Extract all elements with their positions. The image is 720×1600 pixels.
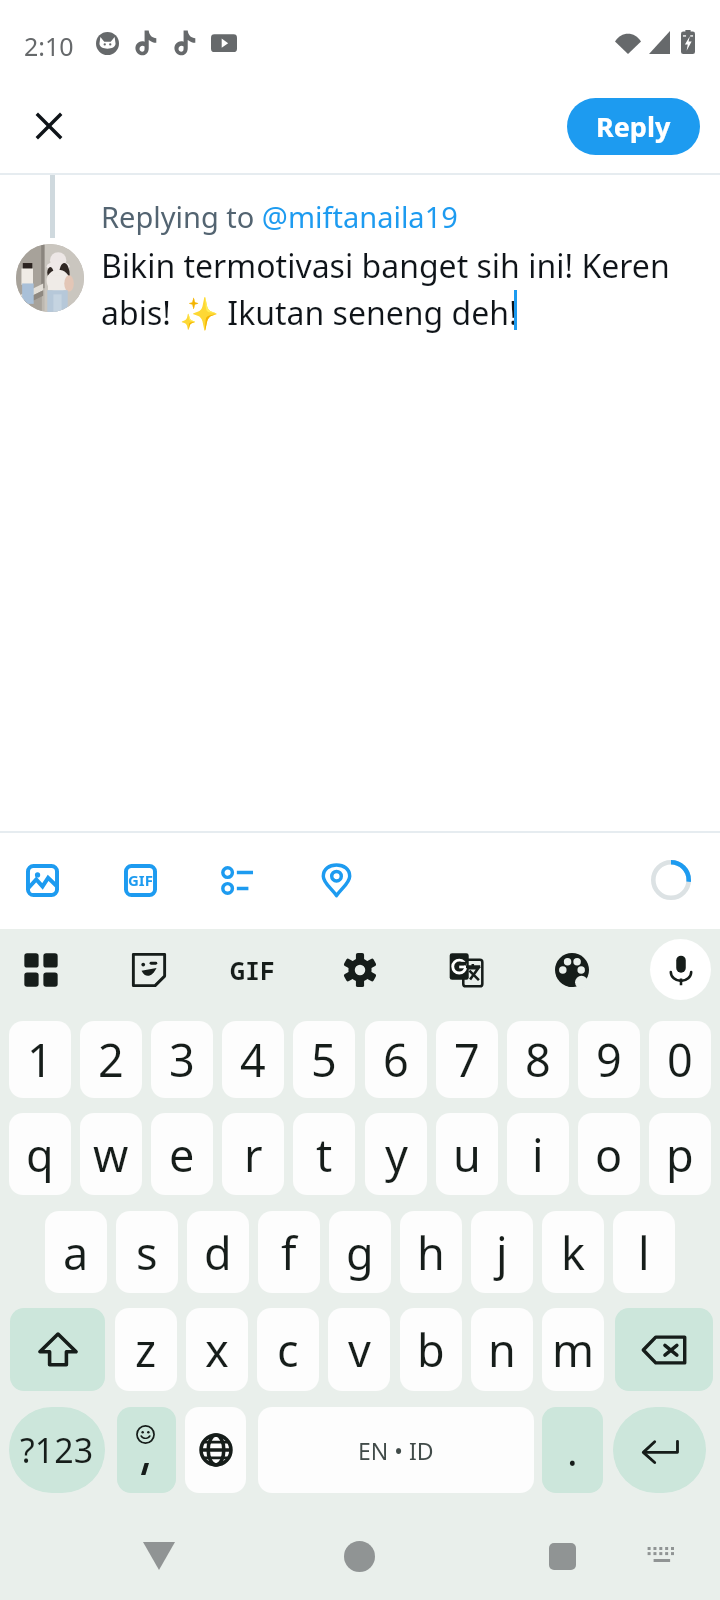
button[interactable]: l (613, 1211, 675, 1293)
button[interactable]: 7 (436, 1021, 498, 1098)
staticText: f (281, 1222, 297, 1283)
button[interactable]: GIF (225, 942, 281, 998)
button[interactable]: n (471, 1308, 533, 1391)
button[interactable]: 9 (578, 1021, 640, 1098)
staticText: c (277, 1319, 299, 1380)
staticText: n (488, 1319, 516, 1380)
button[interactable]: Themes (544, 942, 600, 998)
button[interactable]: Add location (312, 856, 360, 904)
staticText: g (346, 1222, 374, 1283)
button[interactable]: j (471, 1211, 533, 1293)
button[interactable]: m (542, 1308, 604, 1391)
staticText: o (595, 1124, 623, 1185)
button[interactable]: p (649, 1113, 711, 1195)
staticText: Bikin termotivasi banget sih ini! Keren … (101, 244, 681, 335)
staticText: EN • ID (358, 1435, 434, 1466)
button[interactable]: w (80, 1113, 142, 1195)
staticText: Reply (596, 108, 671, 145)
staticText: w (93, 1124, 129, 1185)
staticText: 3 (169, 1029, 195, 1090)
staticText: . (567, 1423, 578, 1477)
button[interactable]: h (400, 1211, 462, 1293)
button[interactable]: GIF (116, 856, 164, 904)
button[interactable]: e (151, 1113, 213, 1195)
staticText: p (666, 1124, 694, 1185)
button[interactable]: g (329, 1211, 391, 1293)
button[interactable]: Apps (13, 942, 69, 998)
staticText: 2:10 (24, 29, 74, 63)
staticText: a (63, 1222, 89, 1283)
staticText: u (453, 1124, 481, 1185)
staticText: d (204, 1222, 232, 1283)
button[interactable]: r (222, 1113, 284, 1195)
button[interactable]: EN • ID (258, 1407, 534, 1493)
staticText: h (417, 1222, 445, 1283)
button[interactable]: 6 (365, 1021, 427, 1098)
button[interactable]: Switch language (185, 1407, 246, 1493)
staticText: y (385, 1124, 408, 1185)
button[interactable]: t (293, 1113, 355, 1195)
button[interactable]: Reply (567, 98, 700, 155)
button[interactable]: b (400, 1308, 462, 1391)
button[interactable]: 3 (151, 1021, 213, 1098)
staticText: q (26, 1124, 54, 1185)
staticText: r (244, 1124, 263, 1185)
button[interactable]: q (9, 1113, 71, 1195)
button[interactable]: 0 (649, 1021, 711, 1098)
button[interactable]: Add photo (18, 856, 66, 904)
button[interactable]: v (328, 1308, 390, 1391)
staticText: 1 (27, 1029, 53, 1090)
button[interactable]: Switch keyboard (632, 1526, 692, 1586)
button[interactable]: a (45, 1211, 107, 1293)
staticText: 0 (667, 1029, 693, 1090)
staticText: 9 (596, 1029, 622, 1090)
button[interactable]: Translate (438, 942, 494, 998)
button[interactable]: Emoji (117, 1407, 176, 1493)
button[interactable]: 1 (9, 1021, 71, 1098)
staticText: v (348, 1319, 371, 1380)
button[interactable]: Recent apps (528, 1522, 596, 1590)
button[interactable]: ?123 (9, 1407, 105, 1493)
button[interactable]: c (257, 1308, 319, 1391)
button[interactable]: Backspace (615, 1308, 713, 1391)
staticText: m (552, 1319, 595, 1380)
button[interactable]: Hide keyboard (125, 1522, 193, 1590)
button[interactable]: u (436, 1113, 498, 1195)
button[interactable]: k (542, 1211, 604, 1293)
button[interactable]: y (365, 1113, 427, 1195)
staticText: e (169, 1124, 195, 1185)
button[interactable]: Home (325, 1522, 393, 1590)
button[interactable]: Close (17, 94, 80, 157)
button[interactable]: Character count (647, 856, 695, 904)
button[interactable]: 2 (80, 1021, 142, 1098)
staticText: z (135, 1319, 157, 1380)
button[interactable]: Shift (10, 1308, 105, 1391)
button[interactable]: Add poll (214, 856, 262, 904)
button[interactable]: . (542, 1407, 603, 1493)
staticText: b (417, 1319, 445, 1380)
staticText: GIF (128, 870, 153, 890)
button[interactable]: 8 (507, 1021, 569, 1098)
button[interactable]: Stickers (121, 942, 177, 998)
button[interactable]: 4 (222, 1021, 284, 1098)
staticText: 5 (311, 1029, 337, 1090)
button[interactable]: 5 (293, 1021, 355, 1098)
staticText: t (316, 1124, 333, 1185)
button[interactable]: s (116, 1211, 178, 1293)
staticText: Replying to @miftanaila19 (101, 197, 458, 236)
button[interactable]: Voice input (650, 939, 711, 1000)
button[interactable]: x (186, 1308, 248, 1391)
button[interactable]: z (115, 1308, 177, 1391)
button[interactable]: o (578, 1113, 640, 1195)
button[interactable]: Settings (332, 942, 388, 998)
button[interactable]: Enter (613, 1407, 706, 1493)
staticText: 7 (454, 1029, 480, 1090)
staticText: k (561, 1222, 586, 1283)
staticText: l (638, 1222, 650, 1283)
staticText: j (496, 1222, 508, 1283)
button[interactable]: f (258, 1211, 320, 1293)
button[interactable]: i (507, 1113, 569, 1195)
staticText: x (205, 1319, 229, 1380)
staticText: 6 (383, 1029, 409, 1090)
button[interactable]: d (187, 1211, 249, 1293)
